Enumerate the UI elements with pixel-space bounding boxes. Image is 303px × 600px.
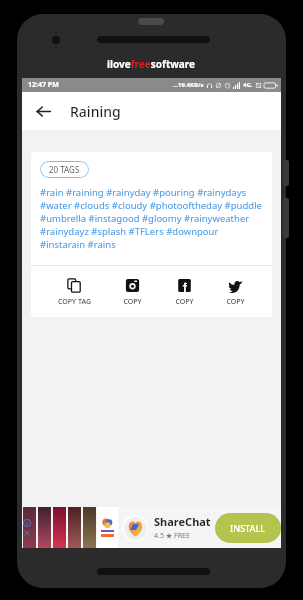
staticText: #rain #raining #rainyday #pouring #rainy… <box>40 186 263 251</box>
staticText: 4G. <box>243 81 253 89</box>
staticText: COPY TAG <box>58 297 91 307</box>
staticText: 20 TAGS <box>49 164 80 175</box>
button[interactable]: INSTALL <box>215 513 281 543</box>
button[interactable]: Back <box>28 96 58 126</box>
button[interactable]: Copy for Twitter <box>220 276 251 309</box>
staticText: FREE <box>174 531 190 541</box>
staticText: ShareChat <box>154 514 211 529</box>
staticText: INSTALL <box>230 522 266 534</box>
staticText: 4.5 <box>154 531 164 541</box>
staticText: Raining <box>70 102 121 121</box>
button[interactable]: Copy for Facebook <box>169 276 200 309</box>
staticText: ilovefreesoftware <box>107 57 196 71</box>
staticText: COPY <box>226 297 245 307</box>
staticText: COPY <box>123 297 142 307</box>
staticText: ...19.4KB/s <box>173 81 204 89</box>
staticText: 12:47 PM <box>28 80 59 90</box>
button[interactable]: 20 TAGS <box>40 161 89 178</box>
staticText: COPY <box>175 297 194 307</box>
button[interactable]: ShareChat <box>22 507 281 548</box>
button[interactable]: Copy for Instagram <box>117 276 148 309</box>
button[interactable]: Copy tag <box>52 276 97 309</box>
